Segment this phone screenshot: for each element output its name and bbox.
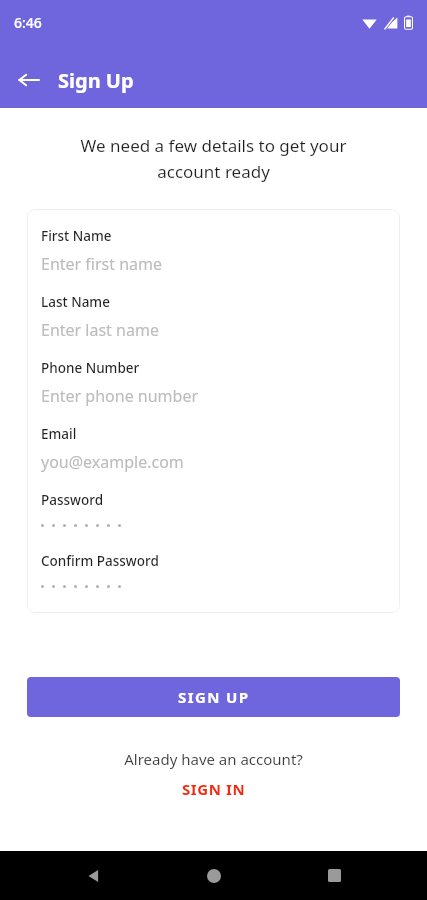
- staticText: Enter phone number: [41, 385, 199, 407]
- button[interactable]: Last Name: [41, 293, 386, 341]
- button[interactable]: SIGN IN: [172, 777, 256, 801]
- staticText: Phone Number: [41, 359, 140, 377]
- button[interactable]: First Name: [41, 227, 386, 275]
- button[interactable]: Phone Number: [41, 359, 386, 407]
- button[interactable]: Password: [41, 491, 386, 534]
- staticText: 6:46: [14, 13, 42, 32]
- button[interactable]: Back: [12, 63, 46, 97]
- staticText: SIGN UP: [178, 687, 250, 707]
- staticText: you@example.com: [41, 451, 184, 473]
- staticText: Confirm Password: [41, 552, 159, 570]
- staticText: SIGN IN: [182, 779, 246, 799]
- button[interactable]: Back: [65, 851, 121, 900]
- staticText: Email: [41, 425, 77, 443]
- button[interactable]: Email: [41, 425, 386, 473]
- staticText: Enter first name: [41, 253, 163, 275]
- button[interactable]: SIGN UP: [27, 677, 400, 717]
- staticText: We need a few details to get your accoun…: [24, 134, 403, 183]
- staticText: First Name: [41, 227, 112, 245]
- staticText: Password: [41, 491, 104, 509]
- staticText: Enter last name: [41, 319, 159, 341]
- staticText: Last Name: [41, 293, 110, 311]
- button[interactable]: Confirm Password: [41, 552, 386, 595]
- staticText: Sign Up: [58, 67, 134, 94]
- staticText: Already have an account?: [0, 749, 427, 769]
- button[interactable]: Home: [186, 851, 242, 900]
- button[interactable]: Recent apps: [306, 851, 362, 900]
